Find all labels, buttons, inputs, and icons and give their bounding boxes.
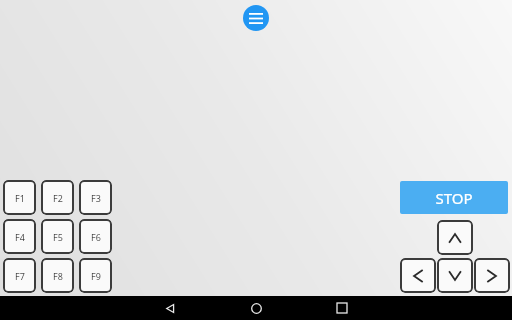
staticText: F8 [53,270,63,282]
button[interactable]: Left [400,258,436,293]
button[interactable]: F8 [41,258,74,293]
staticText: F3 [91,192,101,204]
button[interactable]: Right [474,258,510,293]
button[interactable]: STOP [400,181,508,214]
button[interactable]: F6 [79,219,112,254]
button[interactable]: F3 [79,180,112,215]
staticText: F2 [53,192,63,204]
button[interactable]: F9 [79,258,112,293]
staticText: F9 [91,270,101,282]
staticText: F7 [15,270,25,282]
staticText: STOP [435,188,473,208]
button[interactable]: Home [246,298,266,318]
button[interactable]: Down [437,258,473,293]
button[interactable]: F5 [41,219,74,254]
staticText: F5 [53,231,63,243]
button[interactable]: Up [437,220,473,255]
staticText: F6 [91,231,101,243]
button[interactable]: Recents [332,298,352,318]
staticText: F1 [15,192,25,204]
button[interactable]: Menu [243,5,269,31]
button[interactable]: F2 [41,180,74,215]
button[interactable]: F1 [3,180,36,215]
button[interactable]: F7 [3,258,36,293]
button[interactable]: Back [160,298,180,318]
button[interactable]: F4 [3,219,36,254]
staticText: F4 [15,231,25,243]
